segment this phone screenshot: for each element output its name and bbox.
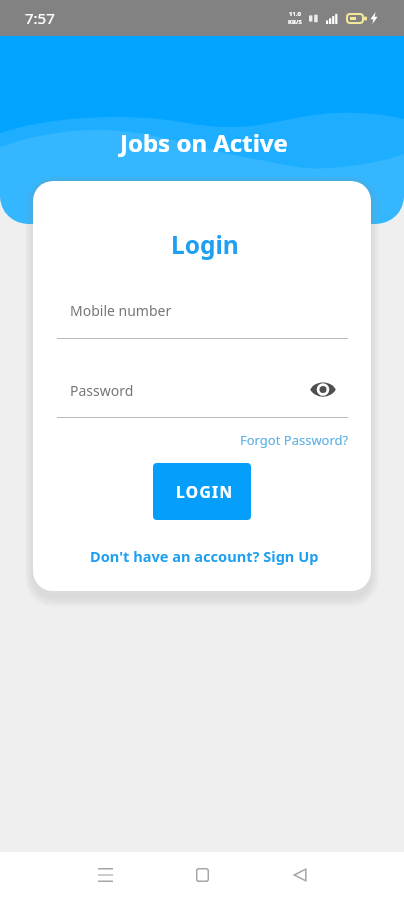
- button[interactable]: LOGIN: [153, 463, 251, 520]
- staticText: 11.0: [289, 10, 301, 18]
- staticText: Don't have an account? Sign Up: [90, 546, 319, 566]
- staticText: Forgot Password?: [240, 431, 349, 449]
- button[interactable]: Don't have an account? Sign Up: [86, 543, 323, 569]
- staticText: LOGIN: [176, 481, 234, 502]
- button[interactable]: Home: [179, 851, 226, 898]
- staticText: KB/S: [288, 18, 302, 26]
- button[interactable]: Recent apps: [82, 851, 129, 898]
- button[interactable]: Back: [276, 851, 323, 898]
- staticText: Login: [171, 228, 239, 261]
- staticText: Mobile number: [70, 301, 172, 320]
- staticText: Password: [70, 381, 134, 400]
- staticText: 7:57: [25, 8, 55, 28]
- staticText: Jobs on Active: [120, 126, 288, 159]
- button[interactable]: Forgot Password?: [234, 426, 355, 454]
- button[interactable]: Show password: [307, 373, 339, 405]
